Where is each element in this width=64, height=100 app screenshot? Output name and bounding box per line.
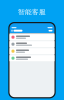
- button[interactable]: [9, 41, 54, 47]
- staticText: 智能客服: [18, 8, 46, 16]
- button[interactable]: [9, 48, 54, 54]
- button[interactable]: [9, 55, 54, 61]
- button[interactable]: [9, 34, 54, 40]
